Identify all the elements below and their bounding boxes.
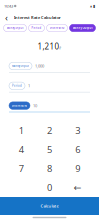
button[interactable]: Money Input	[3, 24, 26, 32]
staticText: 9	[75, 162, 80, 175]
button[interactable]: 7	[7, 159, 35, 178]
staticText: 10:43	[4, 3, 13, 9]
button[interactable]: Period	[9, 82, 25, 89]
staticText: Interest(%)	[49, 26, 64, 30]
button[interactable]: 4	[7, 140, 35, 159]
staticText: ▲	[90, 4, 92, 7]
button[interactable]: 2	[35, 121, 64, 140]
staticText: 1,210	[37, 41, 59, 52]
staticText: Period	[12, 84, 22, 87]
button[interactable]: Delete	[64, 178, 92, 197]
button[interactable]: Back	[3, 13, 10, 22]
staticText: 6	[75, 143, 80, 156]
staticText: Money Input	[12, 64, 29, 68]
staticText: Period	[31, 26, 41, 30]
button[interactable]: 9	[64, 159, 92, 178]
staticText: 1	[28, 83, 30, 88]
button[interactable]: 6	[64, 140, 92, 159]
staticText: 3	[75, 124, 80, 137]
staticText: Money Input	[6, 26, 23, 30]
staticText: ←	[74, 182, 82, 193]
button[interactable]: 1	[7, 121, 35, 140]
staticText: 4	[19, 143, 24, 156]
button[interactable]: 8	[35, 159, 64, 178]
button[interactable]: Period	[28, 24, 44, 32]
staticText: 7	[19, 162, 24, 175]
staticText: 0	[47, 181, 52, 194]
staticText: 2	[47, 124, 52, 137]
button[interactable]: Interest(%)	[9, 102, 30, 109]
staticText: 1	[19, 124, 24, 137]
staticText: ₽	[59, 47, 61, 50]
staticText: 5	[47, 143, 52, 156]
staticText: 1,000	[35, 63, 44, 69]
button[interactable]: Money Input	[9, 62, 32, 70]
staticText: ‹	[5, 11, 8, 24]
staticText: 10	[33, 103, 37, 108]
button[interactable]: 3	[64, 121, 92, 140]
button[interactable]: 5	[35, 140, 64, 159]
staticText: ▮	[93, 4, 95, 8]
button[interactable]: Interest(%)	[46, 24, 67, 32]
staticText: Money Output	[72, 26, 92, 30]
staticText: Interest Rate Calculator	[14, 15, 61, 20]
button[interactable]: Money Output	[69, 24, 95, 32]
staticText: Calculate	[40, 203, 58, 209]
button[interactable]: Calculate	[0, 197, 99, 215]
staticText: Interest(%)	[12, 104, 27, 107]
staticText: 8	[47, 162, 52, 175]
button[interactable]: 0	[35, 178, 64, 197]
